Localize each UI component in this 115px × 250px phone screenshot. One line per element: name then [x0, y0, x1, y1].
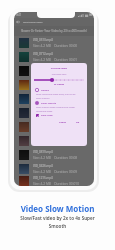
staticText: VID_0819.mp4	[33, 150, 53, 154]
staticText: Size: 4.2 MB Duration: 00:08	[33, 156, 78, 160]
staticText: OK	[76, 121, 80, 124]
staticText: Size: 4.2 MB Duration: 00:04	[33, 100, 78, 104]
staticText: Slower Or Faster Your Video by 2X to 4X(…	[21, 29, 87, 33]
staticText: 9:41	[16, 13, 22, 17]
staticText: Slow/Fast video by 2x to 4x Super Smooth	[0, 215, 115, 230]
staticText: VID_1120.mp4	[33, 66, 53, 70]
staticText: VID_1215.mp4	[33, 176, 53, 180]
staticText: Size: 4.2 MB Duration: 00:02	[33, 72, 78, 76]
staticText: Normal	[41, 89, 50, 92]
staticText: Saves converting speed faster, may not b…	[36, 93, 76, 99]
staticText: VID_0712.mp4	[33, 52, 53, 56]
button[interactable]: Back	[14, 18, 94, 26]
button[interactable]: VID_1215.mp4	[14, 176, 94, 186]
staticText: VID_0918.mp4	[33, 94, 53, 98]
staticText: VID_0304.mp4	[33, 80, 53, 84]
staticText: VID_0513.mp4	[33, 38, 53, 42]
staticText: Super Smooth	[41, 102, 57, 105]
staticText: Video Slow Motion	[0, 203, 115, 214]
staticText: Slow Audio	[41, 114, 53, 117]
button[interactable]: VID_0712.mp4	[14, 50, 94, 64]
button[interactable]: VID_1031.mp4	[14, 120, 94, 134]
button[interactable]: OK	[74, 120, 82, 125]
staticText: CHANGE SPEED	[31, 67, 87, 70]
staticText: Size: 4.2 MB Duration: 00:00	[33, 44, 78, 48]
staticText: SlowMotion Video	[23, 21, 43, 24]
button[interactable]: VID_0607.mp4	[14, 134, 94, 148]
staticText: Size: 4.2 MB Duration: 00:09	[33, 170, 78, 174]
staticText: Size: 4.2 MB Duration: 00:05	[33, 114, 78, 118]
other: Back	[16, 20, 20, 24]
staticText: VID_0225.mp4	[33, 108, 53, 112]
staticText: VID_0426.mp4	[33, 164, 53, 168]
button[interactable]: Cancel	[57, 120, 69, 125]
button[interactable]: VID_0426.mp4	[14, 162, 94, 176]
button[interactable]: Normal	[31, 88, 87, 99]
button[interactable]: VID_0819.mp4	[14, 148, 94, 162]
staticText: Super Smooth video converting by slower …	[36, 106, 76, 112]
button[interactable]	[31, 78, 87, 82]
button[interactable]: VID_0225.mp4	[14, 106, 94, 120]
button[interactable]: VID_0513.mp4	[14, 36, 94, 50]
staticText: Size: 4.2 MB Duration: 00:010	[33, 182, 80, 186]
staticText: Cancel	[59, 121, 67, 124]
staticText: Size: 4.2 MB Duration: 00:01	[33, 58, 78, 62]
staticText: Size: 4.2 MB Duration: 00:03	[33, 86, 78, 90]
staticText: Slow Down Video	[31, 73, 87, 75]
button[interactable]: Super Smooth	[31, 101, 87, 112]
button[interactable]: VID_1120.mp4	[14, 64, 94, 78]
staticText: 2X SLOWER	[31, 83, 87, 85]
button[interactable]: VID_0918.mp4	[14, 92, 94, 106]
button[interactable]: Slow Audio	[36, 114, 87, 117]
button[interactable]: VID_0304.mp4	[14, 78, 94, 92]
